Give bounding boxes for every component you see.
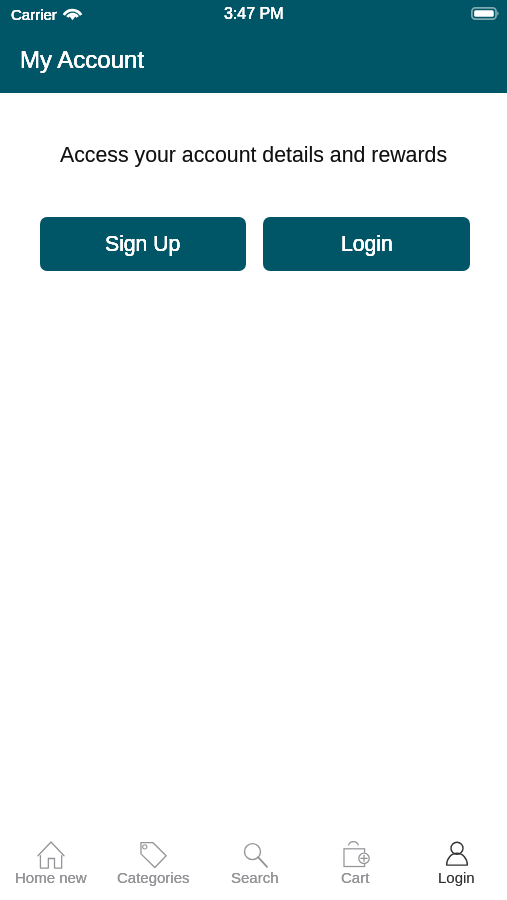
button[interactable]: Home new	[0, 841, 102, 886]
staticText: Cart	[341, 869, 370, 886]
staticText: My Account	[20, 46, 145, 73]
staticText: Search	[231, 869, 279, 886]
staticText: Login	[341, 232, 393, 256]
button[interactable]: Search	[204, 841, 305, 886]
staticText: Login	[438, 869, 475, 886]
staticText: Home new	[15, 869, 87, 886]
staticText: Carrier	[11, 6, 57, 23]
staticText: Sign Up	[105, 232, 181, 256]
staticText: My Account	[20, 46, 145, 73]
button[interactable]: Cart	[305, 841, 406, 886]
staticText: Login	[438, 869, 475, 886]
staticText: Categories	[117, 869, 190, 886]
staticText: Categories	[117, 869, 190, 886]
staticText: 3:47 PM	[224, 5, 284, 23]
staticText: Home new	[15, 869, 87, 886]
button[interactable]: Login	[406, 841, 507, 886]
staticText: Access your account details and rewards	[0, 143, 507, 167]
staticText: Login	[341, 232, 393, 256]
staticText: Carrier	[11, 6, 57, 23]
staticText: 3:47 PM	[224, 5, 284, 23]
staticText: Sign Up	[105, 232, 181, 256]
staticText: Access your account details and rewards	[0, 143, 507, 167]
button[interactable]: Sign Up	[40, 217, 246, 271]
staticText: Cart	[341, 869, 370, 886]
button[interactable]: Login	[263, 217, 470, 271]
staticText: Search	[231, 869, 279, 886]
button[interactable]: Categories	[102, 841, 204, 886]
